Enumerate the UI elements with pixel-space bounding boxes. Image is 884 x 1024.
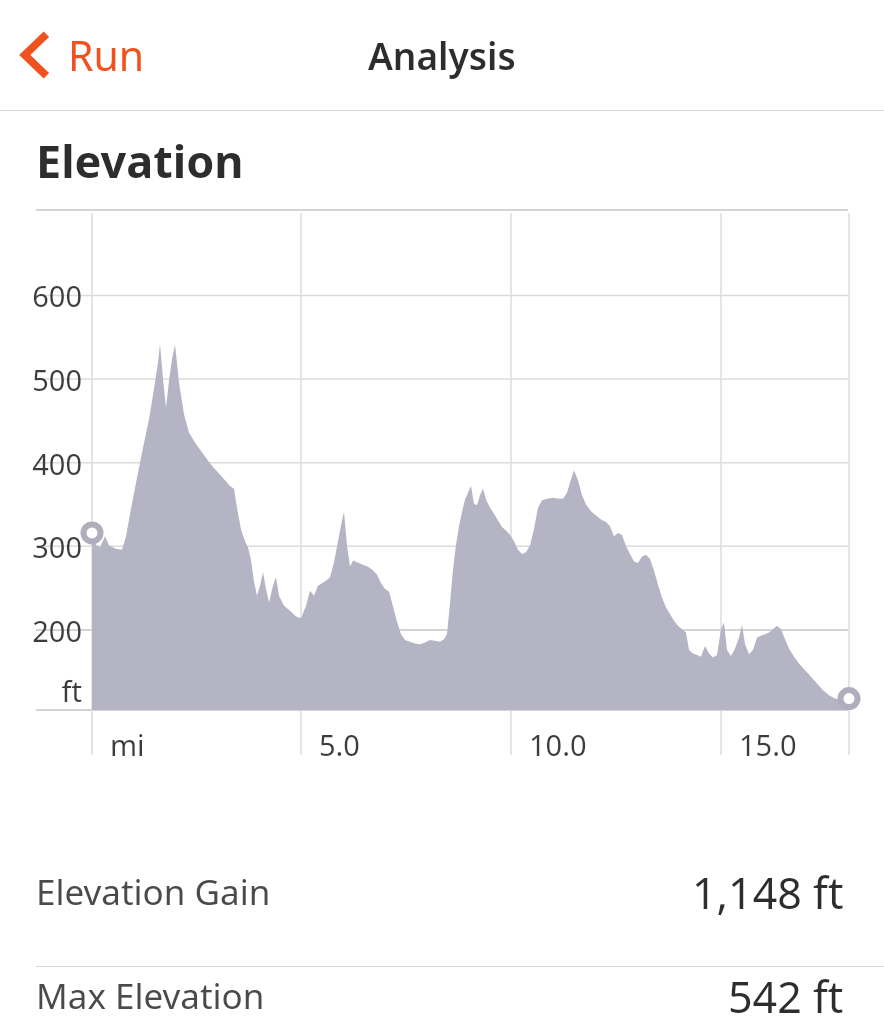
button[interactable]: Max Elevation	[0, 967, 884, 1024]
staticText: 400	[0, 444, 82, 483]
button[interactable]: Back to Run	[6, 19, 159, 91]
staticText: 10.0	[529, 725, 587, 764]
staticText: 300	[0, 527, 82, 566]
staticText: Elevation Gain	[36, 868, 271, 916]
staticText: Analysis	[368, 30, 516, 80]
staticText: Max Elevation	[36, 972, 265, 1020]
staticText: ft	[0, 671, 82, 710]
staticText: mi	[110, 725, 145, 764]
staticText: 15.0	[739, 725, 797, 764]
staticText: 600	[0, 276, 82, 315]
staticText: 5.0	[319, 725, 360, 764]
staticText: 500	[0, 360, 82, 399]
staticText: 542 ft	[728, 967, 844, 1024]
staticText: 200	[0, 611, 82, 650]
staticText: Elevation	[36, 130, 244, 191]
button[interactable]: Elevation Gain	[0, 818, 884, 966]
staticText: 1,148 ft	[692, 863, 844, 922]
staticText: Run	[68, 27, 145, 83]
